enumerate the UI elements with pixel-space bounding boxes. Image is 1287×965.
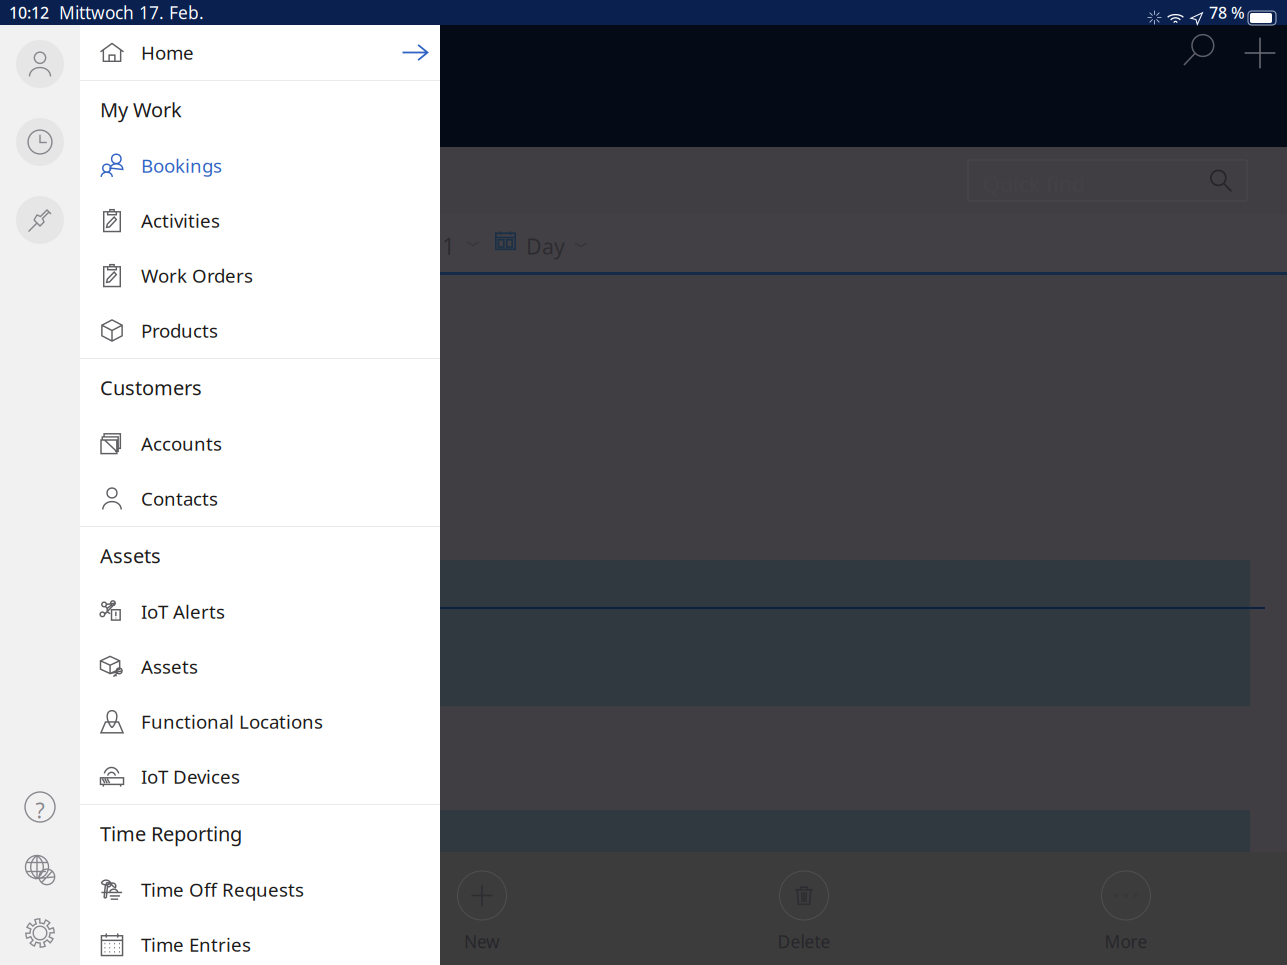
staticText: Accounts xyxy=(141,431,222,456)
button[interactable]: IoT Alerts xyxy=(80,584,440,639)
staticText: 10:12 xyxy=(9,2,49,23)
staticText: IoT Devices xyxy=(141,764,240,789)
staticText: Customers xyxy=(100,374,202,401)
staticText: Assets xyxy=(141,654,198,679)
staticText: Delete xyxy=(777,930,830,953)
button[interactable]: IoT Devices xyxy=(80,749,440,804)
button[interactable]: Products xyxy=(80,303,440,358)
staticText: Time Off Requests xyxy=(141,877,304,902)
button[interactable]: Bookings xyxy=(80,138,440,193)
button[interactable]: Profile xyxy=(16,40,64,88)
button[interactable]: Pinned xyxy=(16,196,64,244)
staticText: New xyxy=(464,930,500,953)
button[interactable]: Activities xyxy=(80,193,440,248)
staticText: Products xyxy=(141,318,218,343)
staticText: IoT Alerts xyxy=(141,599,225,624)
staticText: Time Entries xyxy=(141,932,251,957)
button[interactable]: Recent xyxy=(16,118,64,166)
staticText: 78 % xyxy=(1209,2,1245,23)
button[interactable]: Settings xyxy=(16,909,64,957)
button[interactable]: Assets xyxy=(80,639,440,694)
staticText: Day xyxy=(526,232,565,260)
staticText: 1 xyxy=(442,231,455,261)
button[interactable]: New xyxy=(422,856,542,956)
staticText: My Work xyxy=(100,96,182,123)
button[interactable]: Time Entries xyxy=(80,917,440,965)
staticText: Contacts xyxy=(141,486,218,511)
staticText: Assets xyxy=(100,542,161,569)
button[interactable]: Delete xyxy=(744,856,864,956)
button[interactable]: Home xyxy=(80,25,440,80)
staticText: Work Orders xyxy=(141,263,253,288)
button[interactable]: Work offline xyxy=(16,846,64,894)
staticText: More xyxy=(1104,930,1147,953)
button[interactable]: Time Off Requests xyxy=(80,862,440,917)
staticText: Activities xyxy=(141,208,220,233)
button[interactable]: Functional Locations xyxy=(80,694,440,749)
staticText: Home xyxy=(141,40,194,65)
staticText: ? xyxy=(35,796,44,824)
staticText: Time Reporting xyxy=(100,820,242,847)
button[interactable]: Help xyxy=(16,783,64,831)
staticText: Mittwoch 17. Feb. xyxy=(59,1,204,24)
staticText: Functional Locations xyxy=(141,709,323,734)
button[interactable]: Work Orders xyxy=(80,248,440,303)
staticText: Bookings xyxy=(141,153,222,178)
button[interactable]: Contacts xyxy=(80,471,440,526)
button[interactable]: Accounts xyxy=(80,416,440,471)
